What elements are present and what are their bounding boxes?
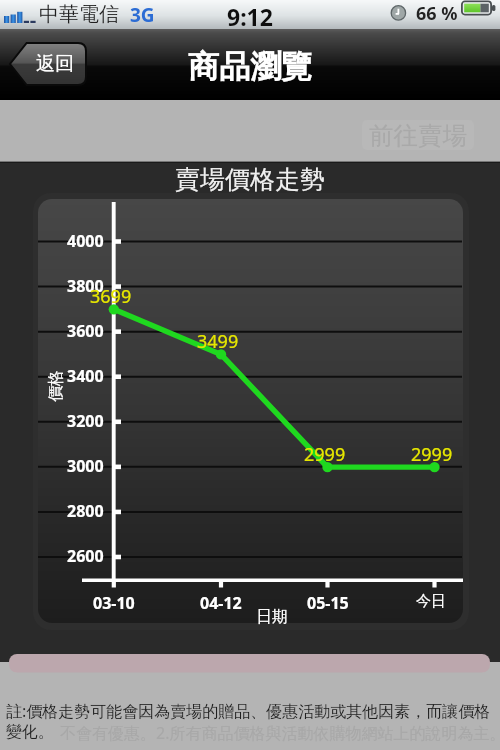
- staticText: 03-10: [93, 592, 135, 614]
- staticText: 3800: [67, 275, 104, 297]
- staticText: 價格: [46, 370, 66, 402]
- button[interactable]: 返回 Back: [9, 43, 86, 85]
- staticText: 3499: [197, 329, 239, 354]
- staticText: 3600: [67, 320, 104, 342]
- staticText: 04-12: [200, 592, 242, 614]
- staticText: 不會有優惠。2.所有商品價格與活動依購物網站上的說明為主。: [60, 722, 500, 744]
- staticText: 2999: [411, 442, 453, 467]
- staticText: 05-15: [307, 592, 349, 614]
- staticText: 3400: [67, 365, 104, 387]
- staticText: 9:12: [227, 1, 273, 30]
- staticText: 註:價格走勢可能會因為賣場的贈品、優惠活動或其他因素，而讓價格 變化。: [6, 700, 491, 742]
- staticText: 返回: [36, 52, 74, 76]
- staticText: 3200: [67, 410, 104, 432]
- staticText: 日期: [256, 607, 288, 627]
- staticText: 66 %: [416, 1, 458, 26]
- staticText: 今日: [416, 592, 446, 611]
- staticText: 2800: [67, 500, 104, 522]
- staticText: 3G: [130, 2, 155, 28]
- button[interactable]: 前往賣場: [362, 120, 474, 150]
- staticText: 商品瀏覽: [188, 47, 312, 86]
- staticText: 4000: [67, 230, 104, 252]
- staticText: 2600: [67, 545, 104, 567]
- staticText: 2999: [304, 442, 346, 467]
- staticText: 前往賣場: [369, 120, 467, 150]
- staticText: 3699: [90, 284, 132, 309]
- staticText: 中華電信: [39, 2, 119, 27]
- staticText: 賣場價格走勢: [175, 164, 325, 195]
- staticText: 3000: [67, 455, 104, 477]
